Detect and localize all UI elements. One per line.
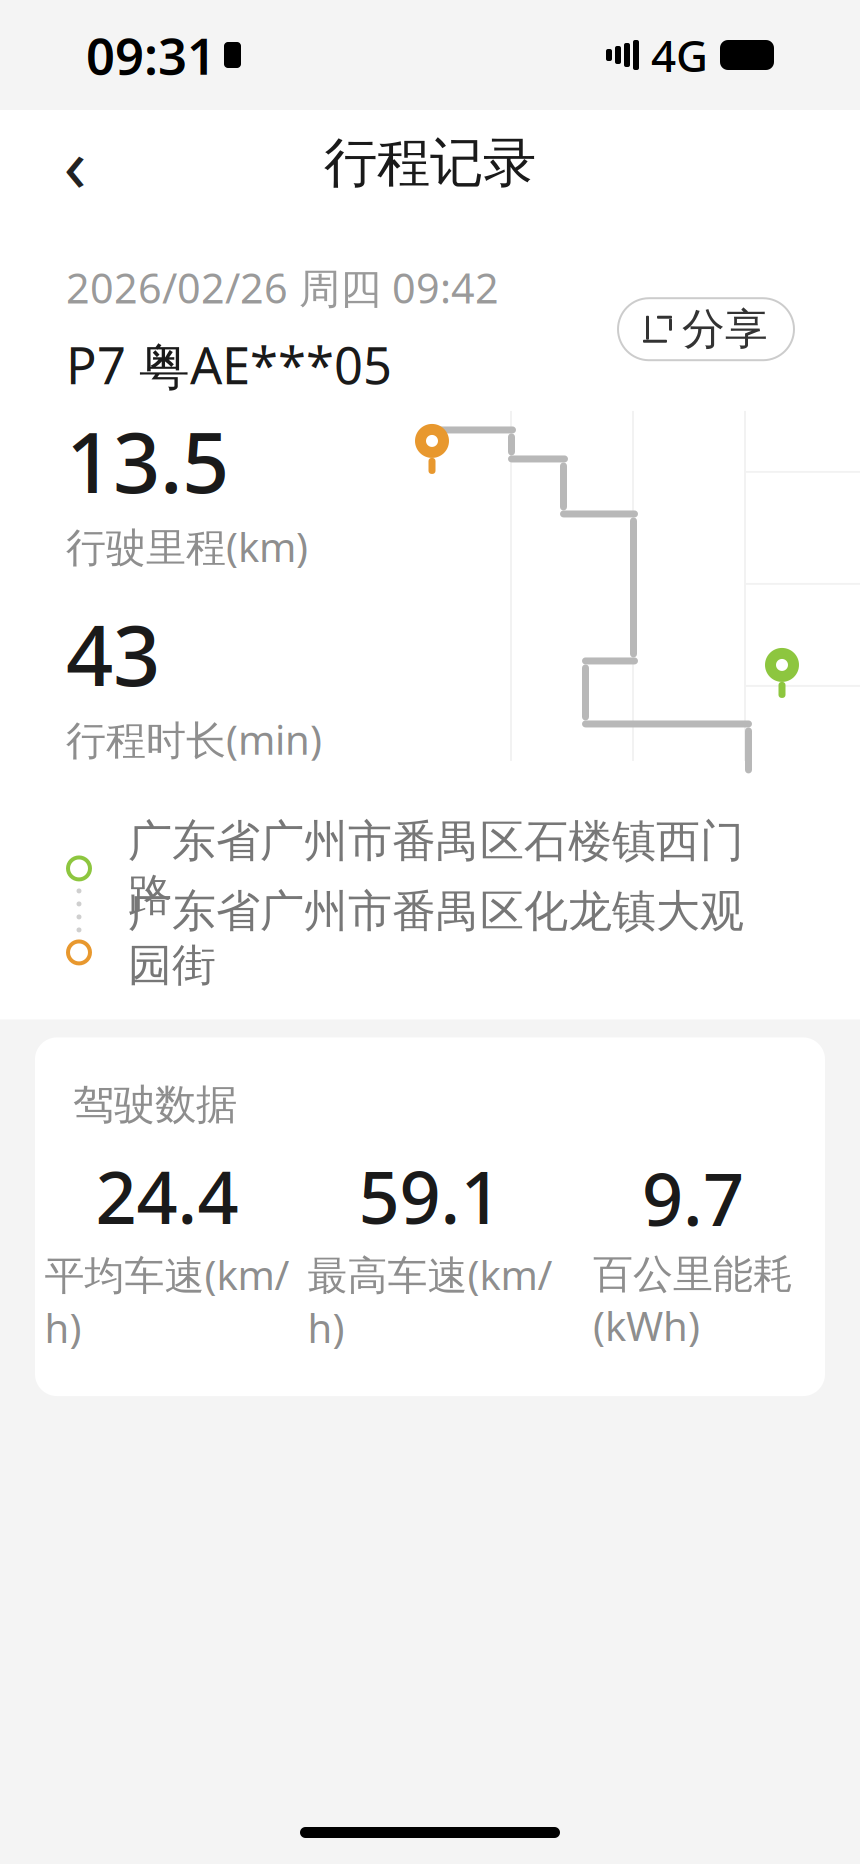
staticText: 行程记录: [324, 130, 536, 196]
staticText: ‹: [63, 113, 86, 213]
staticText: 驾驶数据: [73, 1079, 237, 1130]
staticText: 广东省广州市番禺区化龙镇大观园街: [128, 884, 744, 992]
button[interactable]: Back: [40, 128, 110, 198]
staticText: 广东省广州市番禺区石楼镇西门路: [128, 814, 744, 922]
staticText: 59.1: [358, 1148, 501, 1244]
staticText: 最高车速(km/h): [307, 1248, 552, 1354]
staticText: 24.4: [95, 1148, 238, 1244]
staticText: P7 粤AE***05: [66, 331, 392, 398]
staticText: 09:31: [86, 21, 216, 89]
staticText: 9.7: [642, 1150, 744, 1246]
staticText: 分享: [682, 303, 768, 355]
button[interactable]: 分享: [618, 298, 794, 360]
staticText: 13.5: [66, 406, 229, 516]
staticText: 百公里能耗(kWh): [593, 1250, 793, 1352]
staticText: 43: [66, 599, 160, 709]
staticText: 2026/02/26 周四 09:42: [66, 260, 499, 315]
staticText: 平均车速(km/h): [44, 1248, 289, 1354]
staticText: 行程时长(min): [66, 713, 322, 766]
staticText: 行驶里程(km): [66, 520, 308, 573]
staticText: 4G: [651, 26, 708, 84]
